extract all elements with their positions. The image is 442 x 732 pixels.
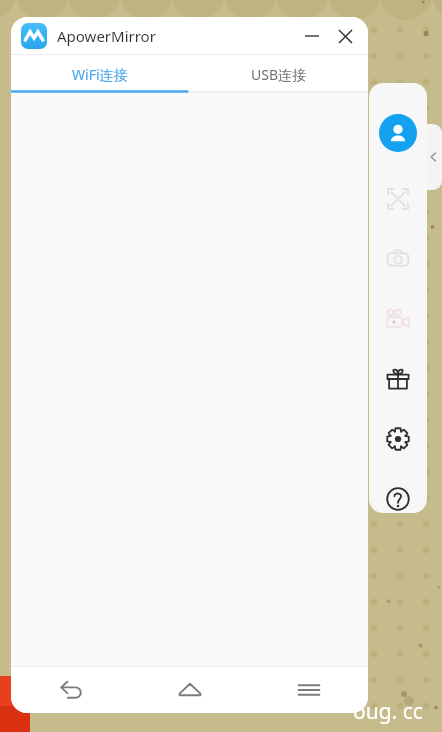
button[interactable]: Collapse panel <box>418 124 442 190</box>
button[interactable]: Full screen <box>379 180 417 218</box>
button[interactable]: USB连接 <box>189 55 368 93</box>
button[interactable]: Gift <box>379 360 417 398</box>
button[interactable]: Help <box>379 480 417 513</box>
staticText: USB连接 <box>251 65 307 84</box>
button[interactable]: Record <box>379 300 417 338</box>
button[interactable]: Close <box>330 21 360 51</box>
button[interactable]: Back <box>11 667 130 713</box>
button[interactable]: WiFi连接 <box>11 55 189 93</box>
button[interactable]: Account <box>379 114 417 152</box>
button[interactable]: Minimize <box>297 21 327 51</box>
staticText: WiFi连接 <box>72 65 128 84</box>
staticText: ApowerMirror <box>57 26 156 46</box>
button[interactable]: Settings <box>379 420 417 458</box>
button[interactable]: Home <box>130 667 249 713</box>
button[interactable]: Screenshot <box>379 240 417 278</box>
button[interactable]: Recent apps <box>249 667 368 713</box>
staticText: oug. cc <box>353 697 423 726</box>
